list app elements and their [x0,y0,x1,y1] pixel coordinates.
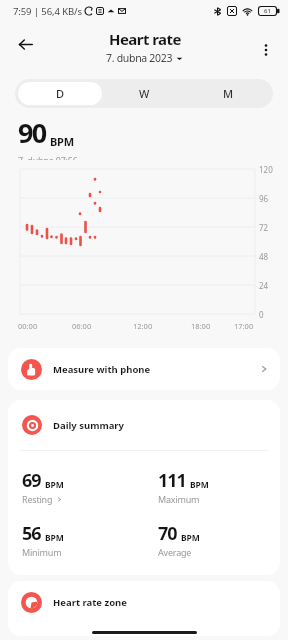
staticText: 7. dubna 2023 [106,51,173,65]
staticText: BPM [190,479,209,491]
staticText: 48 [259,251,269,262]
staticText: 24 [259,280,269,291]
staticText: Heart rate zone [53,596,127,609]
staticText: D [56,86,65,101]
staticText: M [223,86,234,101]
staticText: 00:00 [18,321,38,331]
button[interactable]: Measure with phone [8,348,280,390]
staticText: Minimum [22,546,62,558]
staticText: BPM [45,532,64,544]
staticText: 18:00 [191,321,211,331]
staticText: BPM [50,134,74,149]
staticText: 7:59 | 56,4 KB/s [13,5,82,18]
staticText: 69 [22,468,41,493]
staticText: 06:00 [72,321,92,331]
staticText: 17:00 [234,321,254,331]
staticText: BPM [181,532,200,544]
button[interactable]: 70 [158,521,268,558]
staticText: 120 [259,164,273,175]
staticText: 56 [22,521,41,546]
staticText: 12:00 [133,321,153,331]
staticText: Average [158,546,192,558]
staticText: 96 [259,193,269,204]
staticText: 61 [264,7,271,15]
staticText: 7. dubna 07:56 [18,154,78,160]
button[interactable]: 7. dubna 2023 [104,50,185,66]
staticText: 72 [259,222,269,233]
staticText: 0 [259,309,264,320]
staticText: Measure with phone [53,363,151,376]
button[interactable]: More options [252,36,280,64]
staticText: Daily summary [53,419,125,432]
button[interactable]: 111 [158,468,268,505]
staticText: Maximum [158,493,200,505]
button[interactable]: M [186,82,270,105]
staticText: Heart rate [109,29,181,49]
staticText: 70 [158,521,177,546]
staticText: Resting [22,493,53,505]
button[interactable]: Back [8,27,42,61]
button[interactable]: Heart rate zone [8,581,280,636]
button[interactable]: 69 [22,468,158,505]
staticText: BPM [45,479,64,491]
staticText: W [139,86,150,101]
button[interactable]: D [18,82,102,105]
staticText: 90 [18,114,46,151]
button[interactable]: 56 [22,521,158,558]
button[interactable]: W [102,82,186,105]
staticText: 111 [158,468,186,493]
